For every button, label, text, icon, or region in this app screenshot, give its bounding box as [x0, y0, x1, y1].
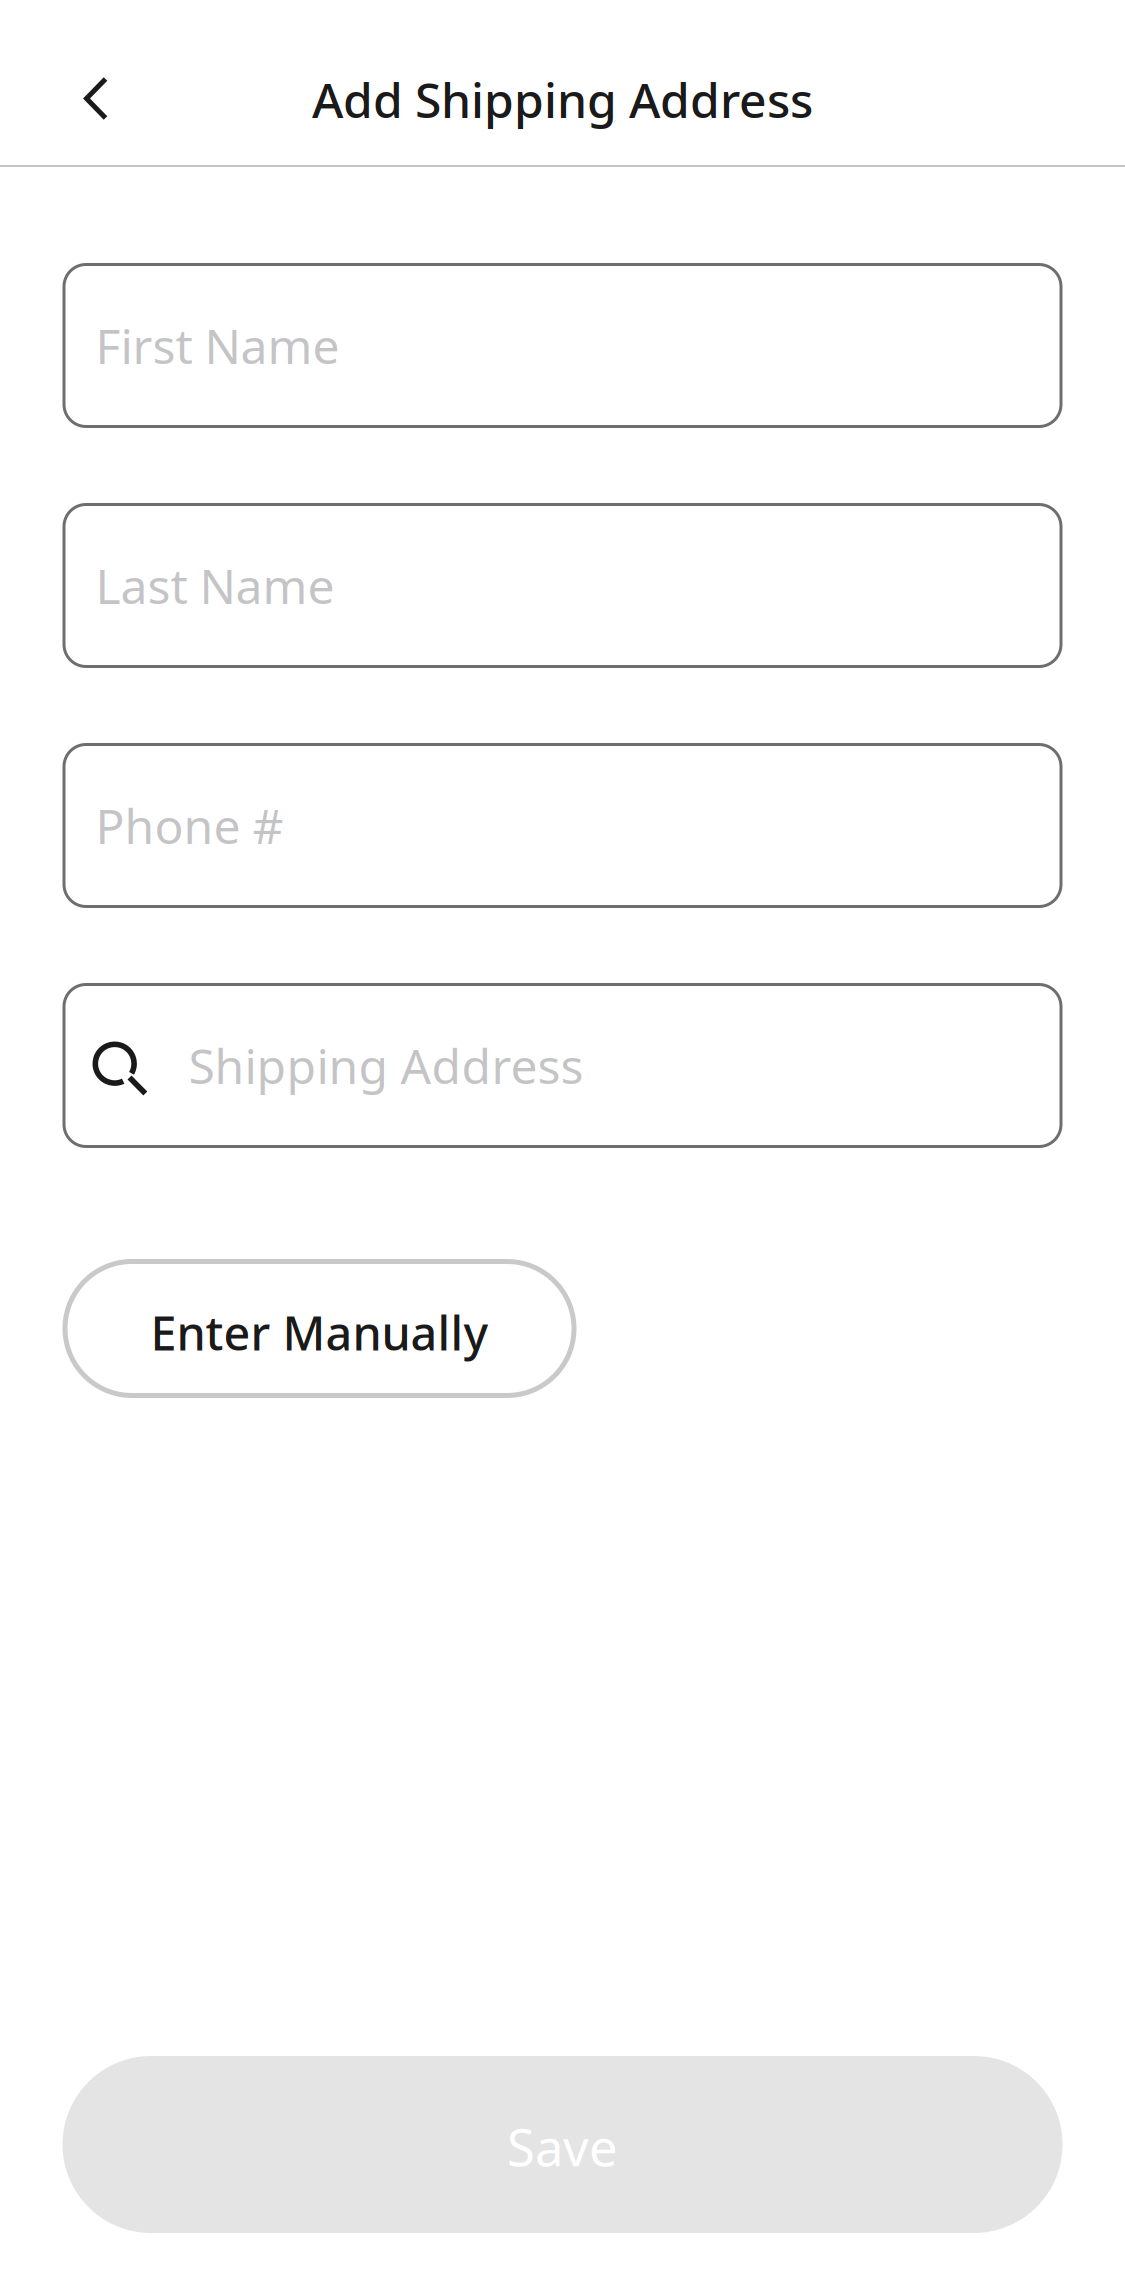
button[interactable]: Phone #: [62, 743, 1062, 908]
staticText: Last Name: [95, 554, 334, 617]
button[interactable]: Shipping Address: [62, 983, 1062, 1148]
staticText: Enter Manually: [150, 1301, 488, 1363]
button[interactable]: First Name: [62, 263, 1062, 428]
staticText: Shipping Address: [188, 1034, 583, 1097]
staticText: First Name: [95, 314, 339, 377]
button[interactable]: Last Name: [62, 503, 1062, 668]
staticText: Phone #: [95, 794, 283, 857]
staticText: Add Shipping Address: [312, 68, 813, 131]
button[interactable]: Back: [54, 56, 138, 140]
staticText: Save: [507, 2113, 618, 2180]
button[interactable]: Save: [62, 2056, 1062, 2233]
button[interactable]: Enter Manually: [62, 1259, 576, 1398]
